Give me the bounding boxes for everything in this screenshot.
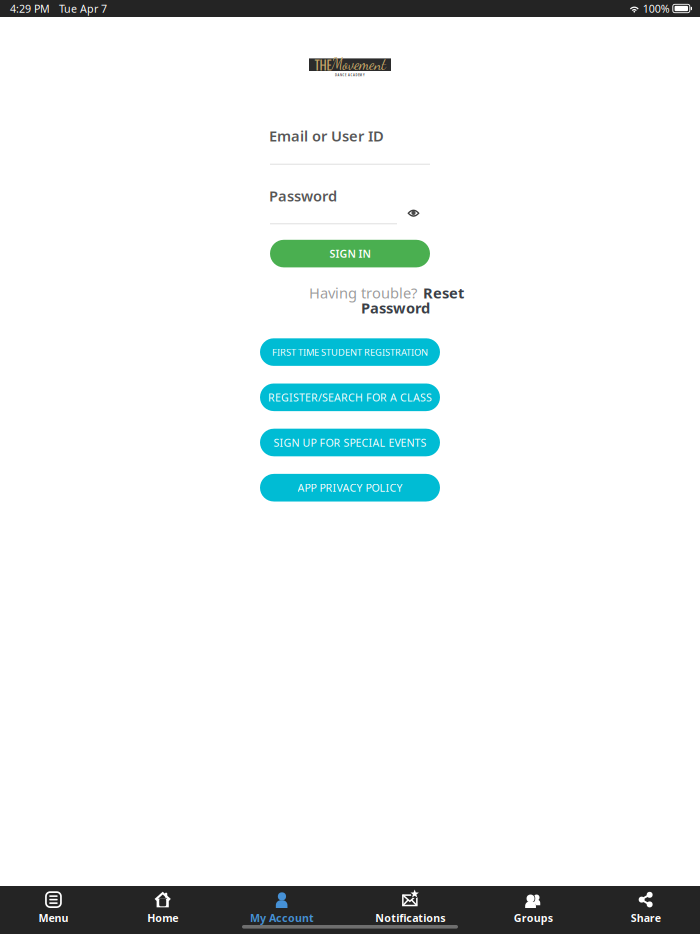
- staticText: Password: [361, 298, 430, 317]
- staticText: APP PRIVACY POLICY: [297, 481, 402, 495]
- staticText: Menu: [38, 911, 68, 925]
- staticText: 4:29 PM: [10, 1, 50, 16]
- button[interactable]: SIGN IN: [270, 240, 430, 267]
- button[interactable]: SIGN UP FOR SPECIAL EVENTS: [260, 429, 440, 456]
- button[interactable]: Share: [591, 891, 700, 925]
- staticText: REGISTER/SEARCH FOR A CLASS: [268, 390, 432, 404]
- staticText: THE: [314, 55, 331, 74]
- staticText: Reset: [423, 283, 464, 302]
- staticText: FIRST TIME STUDENT REGISTRATION: [272, 346, 428, 358]
- staticText: Password: [269, 186, 337, 205]
- staticText: Movement: [331, 55, 385, 73]
- staticText: SIGN UP FOR SPECIAL EVENTS: [273, 435, 426, 450]
- button[interactable]: Reset: [423, 283, 464, 302]
- button[interactable]: Notifications: [345, 891, 475, 925]
- button[interactable]: My Account: [218, 891, 345, 925]
- button[interactable]: Groups: [475, 891, 591, 925]
- staticText: Share: [631, 911, 661, 925]
- staticText: Home: [147, 911, 178, 925]
- button[interactable]: APP PRIVACY POLICY: [260, 474, 440, 501]
- staticText: Email or User ID: [269, 126, 384, 145]
- staticText: Notifications: [375, 911, 445, 925]
- button[interactable]: Menu: [0, 891, 107, 925]
- staticText: Groups: [514, 911, 553, 925]
- button[interactable]: Show password: [403, 205, 424, 222]
- button[interactable]: FIRST TIME STUDENT REGISTRATION: [260, 338, 440, 366]
- staticText: My Account: [250, 911, 314, 925]
- staticText: SIGN IN: [329, 246, 370, 261]
- staticText: Tue Apr 7: [59, 1, 107, 16]
- button[interactable]: Home: [107, 891, 218, 925]
- staticText: DANCE ACADEMY: [335, 73, 365, 77]
- staticText: Having trouble?: [309, 283, 417, 302]
- staticText: 100%: [643, 1, 670, 16]
- button[interactable]: REGISTER/SEARCH FOR A CLASS: [260, 383, 440, 411]
- button[interactable]: Password: [361, 298, 430, 317]
